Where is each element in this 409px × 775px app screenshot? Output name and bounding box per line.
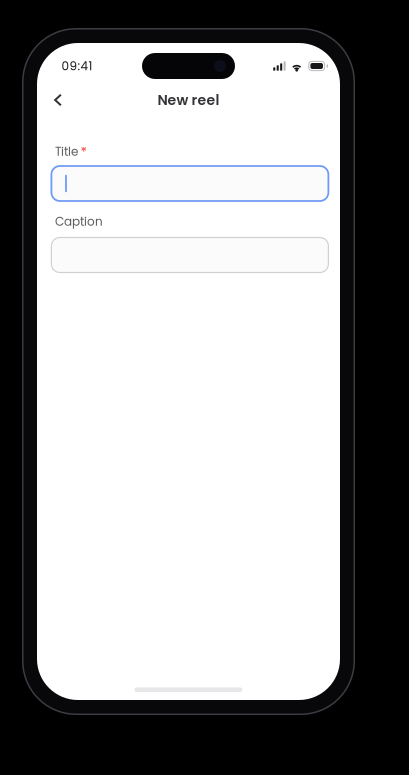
staticText: Title <box>55 143 78 160</box>
staticText: New reel <box>157 90 219 110</box>
staticText: 09:41 <box>61 58 92 74</box>
button[interactable]: Back <box>43 86 73 114</box>
button[interactable] <box>51 237 328 272</box>
staticText: * <box>80 143 86 162</box>
button[interactable] <box>51 166 328 201</box>
staticText: Caption <box>55 213 103 230</box>
